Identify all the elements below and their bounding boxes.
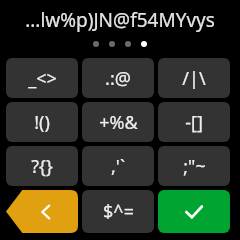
staticText: ...lw%p)JN@f54MYvys: [25, 7, 215, 33]
staticText: .:@: [105, 66, 131, 91]
staticText: $^=: [103, 199, 134, 224]
button[interactable]: .:@: [82, 58, 154, 98]
staticText: ,'`: [111, 154, 125, 179]
staticText: ;"~: [183, 154, 206, 179]
button[interactable]: !(): [6, 102, 78, 142]
button[interactable]: ...lw%p)JN@f54MYvys: [0, 6, 240, 34]
button[interactable]: -[]: [158, 102, 230, 142]
button[interactable]: Backspace: [6, 190, 78, 233]
staticText: +%&: [99, 110, 138, 135]
button[interactable]: ,'`: [82, 146, 154, 186]
staticText: ?{}: [31, 154, 53, 179]
button[interactable]: $^=: [82, 190, 154, 233]
button[interactable]: +%&: [82, 102, 154, 142]
button[interactable]: ?{}: [6, 146, 78, 186]
staticText: -[]: [185, 110, 203, 135]
staticText: _<>: [28, 66, 57, 91]
staticText: /|\: [182, 66, 206, 91]
button[interactable]: /|\: [158, 58, 230, 98]
staticText: !(): [34, 110, 50, 135]
button[interactable]: ;"~: [158, 146, 230, 186]
button[interactable]: _<>: [6, 58, 78, 98]
button[interactable]: Confirm: [158, 190, 230, 233]
